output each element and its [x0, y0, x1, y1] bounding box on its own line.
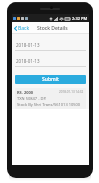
button[interactable]: Back — [12, 24, 32, 33]
button[interactable]: Select date — [15, 58, 86, 67]
staticText: Stock By Shri Trans/561013 10500 — [17, 102, 81, 107]
staticText: Submit — [42, 76, 59, 83]
staticText: RS. 2000 — [17, 90, 34, 95]
button[interactable]: Submit — [15, 75, 86, 84]
staticText: 2018-01-13 — [16, 42, 40, 48]
staticText: Back — [18, 25, 30, 32]
staticText: 2018-01-13 14:32 — [59, 90, 84, 94]
staticText: Stock Details — [37, 25, 68, 32]
button[interactable]: Select date — [15, 42, 86, 51]
button[interactable]: RS. 2000 — [15, 88, 86, 109]
staticText: TXN 50847 - DP. — [17, 96, 47, 101]
staticText: 2:32 PM — [72, 16, 88, 21]
staticText: 2018-01-13 — [16, 58, 40, 64]
